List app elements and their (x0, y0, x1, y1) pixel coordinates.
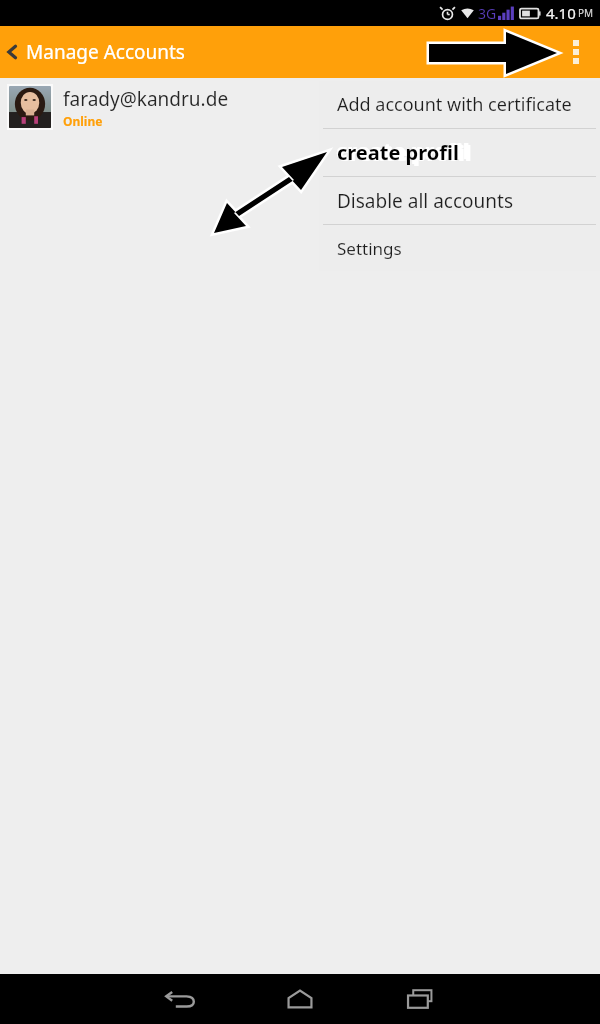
staticText: farady@kandru.de (63, 86, 229, 112)
staticText: PM (578, 6, 594, 20)
button[interactable]: Disable all accounts (319, 177, 600, 224)
other: Back (4, 44, 20, 60)
button[interactable]: Recent apps (360, 974, 480, 1024)
staticText: 3G (478, 4, 497, 23)
button[interactable]: Add account with certificate (319, 81, 600, 128)
staticText: create profil (337, 139, 459, 166)
staticText: Online (63, 113, 103, 129)
button[interactable]: Back (120, 974, 240, 1024)
button[interactable]: farady@kandru.de (0, 78, 600, 136)
button[interactable]: Back (0, 33, 193, 71)
staticText: create profil (336, 137, 470, 166)
staticText: 4.10 (546, 3, 576, 23)
button[interactable]: create profil (319, 129, 600, 176)
button[interactable]: Settings (319, 225, 600, 271)
staticText: Disable all accounts (337, 188, 514, 214)
staticText: Manage Accounts (26, 39, 185, 65)
staticText: create profil (338, 139, 472, 168)
button[interactable]: Home (240, 974, 360, 1024)
button[interactable]: More options (552, 26, 600, 78)
staticText: Add account with certificate (337, 92, 572, 117)
staticText: Settings (337, 237, 402, 260)
